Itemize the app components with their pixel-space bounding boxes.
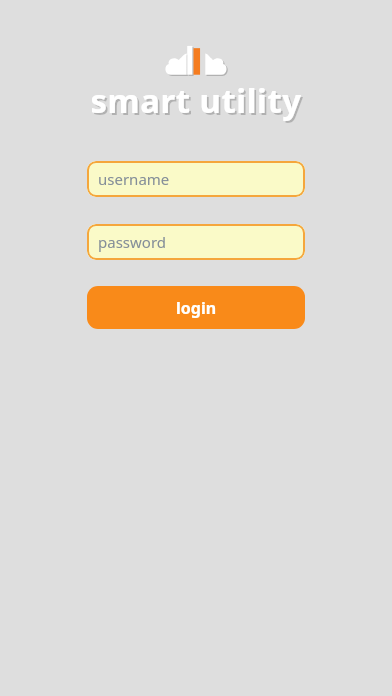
- staticText: login: [176, 297, 217, 319]
- button[interactable]: username: [87, 161, 305, 197]
- staticText: password: [98, 232, 166, 252]
- staticText: smart utility: [92, 80, 304, 125]
- button[interactable]: password: [87, 224, 305, 260]
- button[interactable]: login: [87, 286, 305, 329]
- staticText: smart utility: [90, 78, 302, 123]
- staticText: username: [98, 169, 170, 189]
